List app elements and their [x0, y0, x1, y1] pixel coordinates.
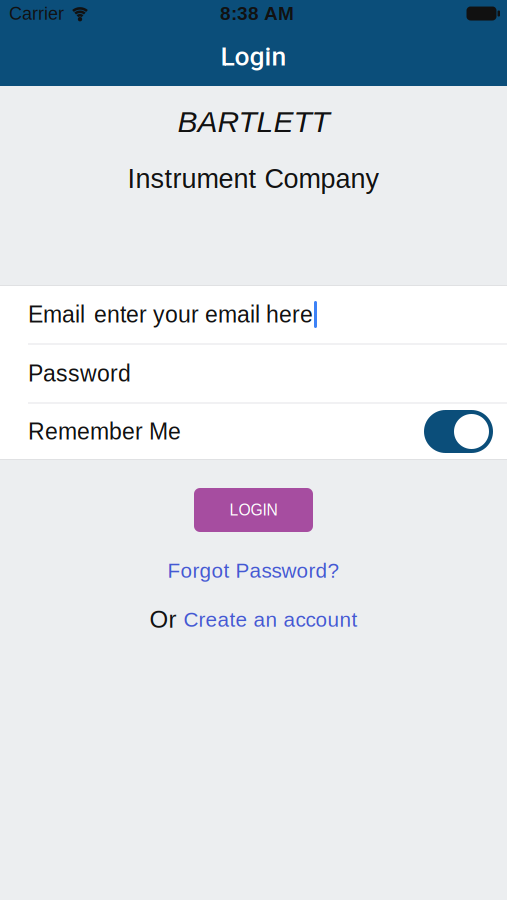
staticText: Remember Me: [28, 419, 181, 444]
staticText: Instrument Company: [127, 163, 379, 194]
staticText: 8:38 AM: [220, 3, 294, 24]
staticText: Create an account: [183, 608, 357, 631]
button[interactable]: Create an account: [183, 608, 357, 631]
staticText: BARTLETT: [177, 105, 329, 138]
staticText: Forgot Password?: [167, 559, 339, 582]
staticText: Password: [28, 361, 131, 386]
button[interactable]: Forgot Password?: [167, 559, 339, 582]
staticText: Login: [220, 41, 286, 72]
button[interactable]: Remember Me: [424, 410, 493, 453]
staticText: enter your email here: [94, 302, 313, 327]
button[interactable]: Email: [0, 286, 507, 343]
staticText: LOGIN: [229, 501, 277, 519]
staticText: Or: [149, 606, 176, 633]
staticText: Carrier: [9, 3, 64, 23]
staticText: Email: [28, 302, 85, 327]
button[interactable]: LOGIN: [194, 488, 313, 532]
button[interactable]: Password: [0, 345, 507, 402]
